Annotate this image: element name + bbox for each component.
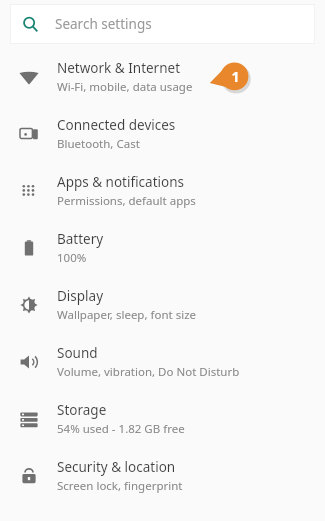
staticText: Network & Internet xyxy=(57,59,181,77)
staticText: Screen lock, fingerprint xyxy=(57,478,183,494)
staticText: Apps & notifications xyxy=(57,173,184,191)
button[interactable]: Search xyxy=(10,4,315,44)
staticText: Display xyxy=(57,287,104,305)
button[interactable]: Storage xyxy=(0,390,325,447)
other: Search xyxy=(22,16,39,33)
staticText: Storage xyxy=(57,401,107,419)
button[interactable]: Apps & notifications xyxy=(0,162,325,219)
staticText: Bluetooth, Cast xyxy=(57,136,140,152)
staticText: 1 xyxy=(231,67,240,86)
staticText: Search settings xyxy=(55,15,152,33)
button[interactable]: Connected devices xyxy=(0,105,325,162)
button[interactable]: Display xyxy=(0,276,325,333)
other: Step 1 marker xyxy=(209,61,253,96)
staticText: 54% used - 1.82 GB free xyxy=(57,421,185,437)
staticText: Wallpaper, sleep, font size xyxy=(57,307,197,323)
staticText: Battery xyxy=(57,230,104,248)
staticText: Permissions, default apps xyxy=(57,193,196,209)
staticText: 100% xyxy=(57,250,87,266)
staticText: Security & location xyxy=(57,458,176,476)
button[interactable]: Battery xyxy=(0,219,325,276)
staticText: Wi-Fi, mobile, data usage xyxy=(57,79,193,95)
staticText: Connected devices xyxy=(57,116,176,134)
button[interactable]: Sound xyxy=(0,333,325,390)
button[interactable]: Security & location xyxy=(0,447,325,504)
staticText: Sound xyxy=(57,344,98,362)
staticText: Volume, vibration, Do Not Disturb xyxy=(57,364,240,380)
button[interactable]: Network & Internet xyxy=(0,48,325,105)
